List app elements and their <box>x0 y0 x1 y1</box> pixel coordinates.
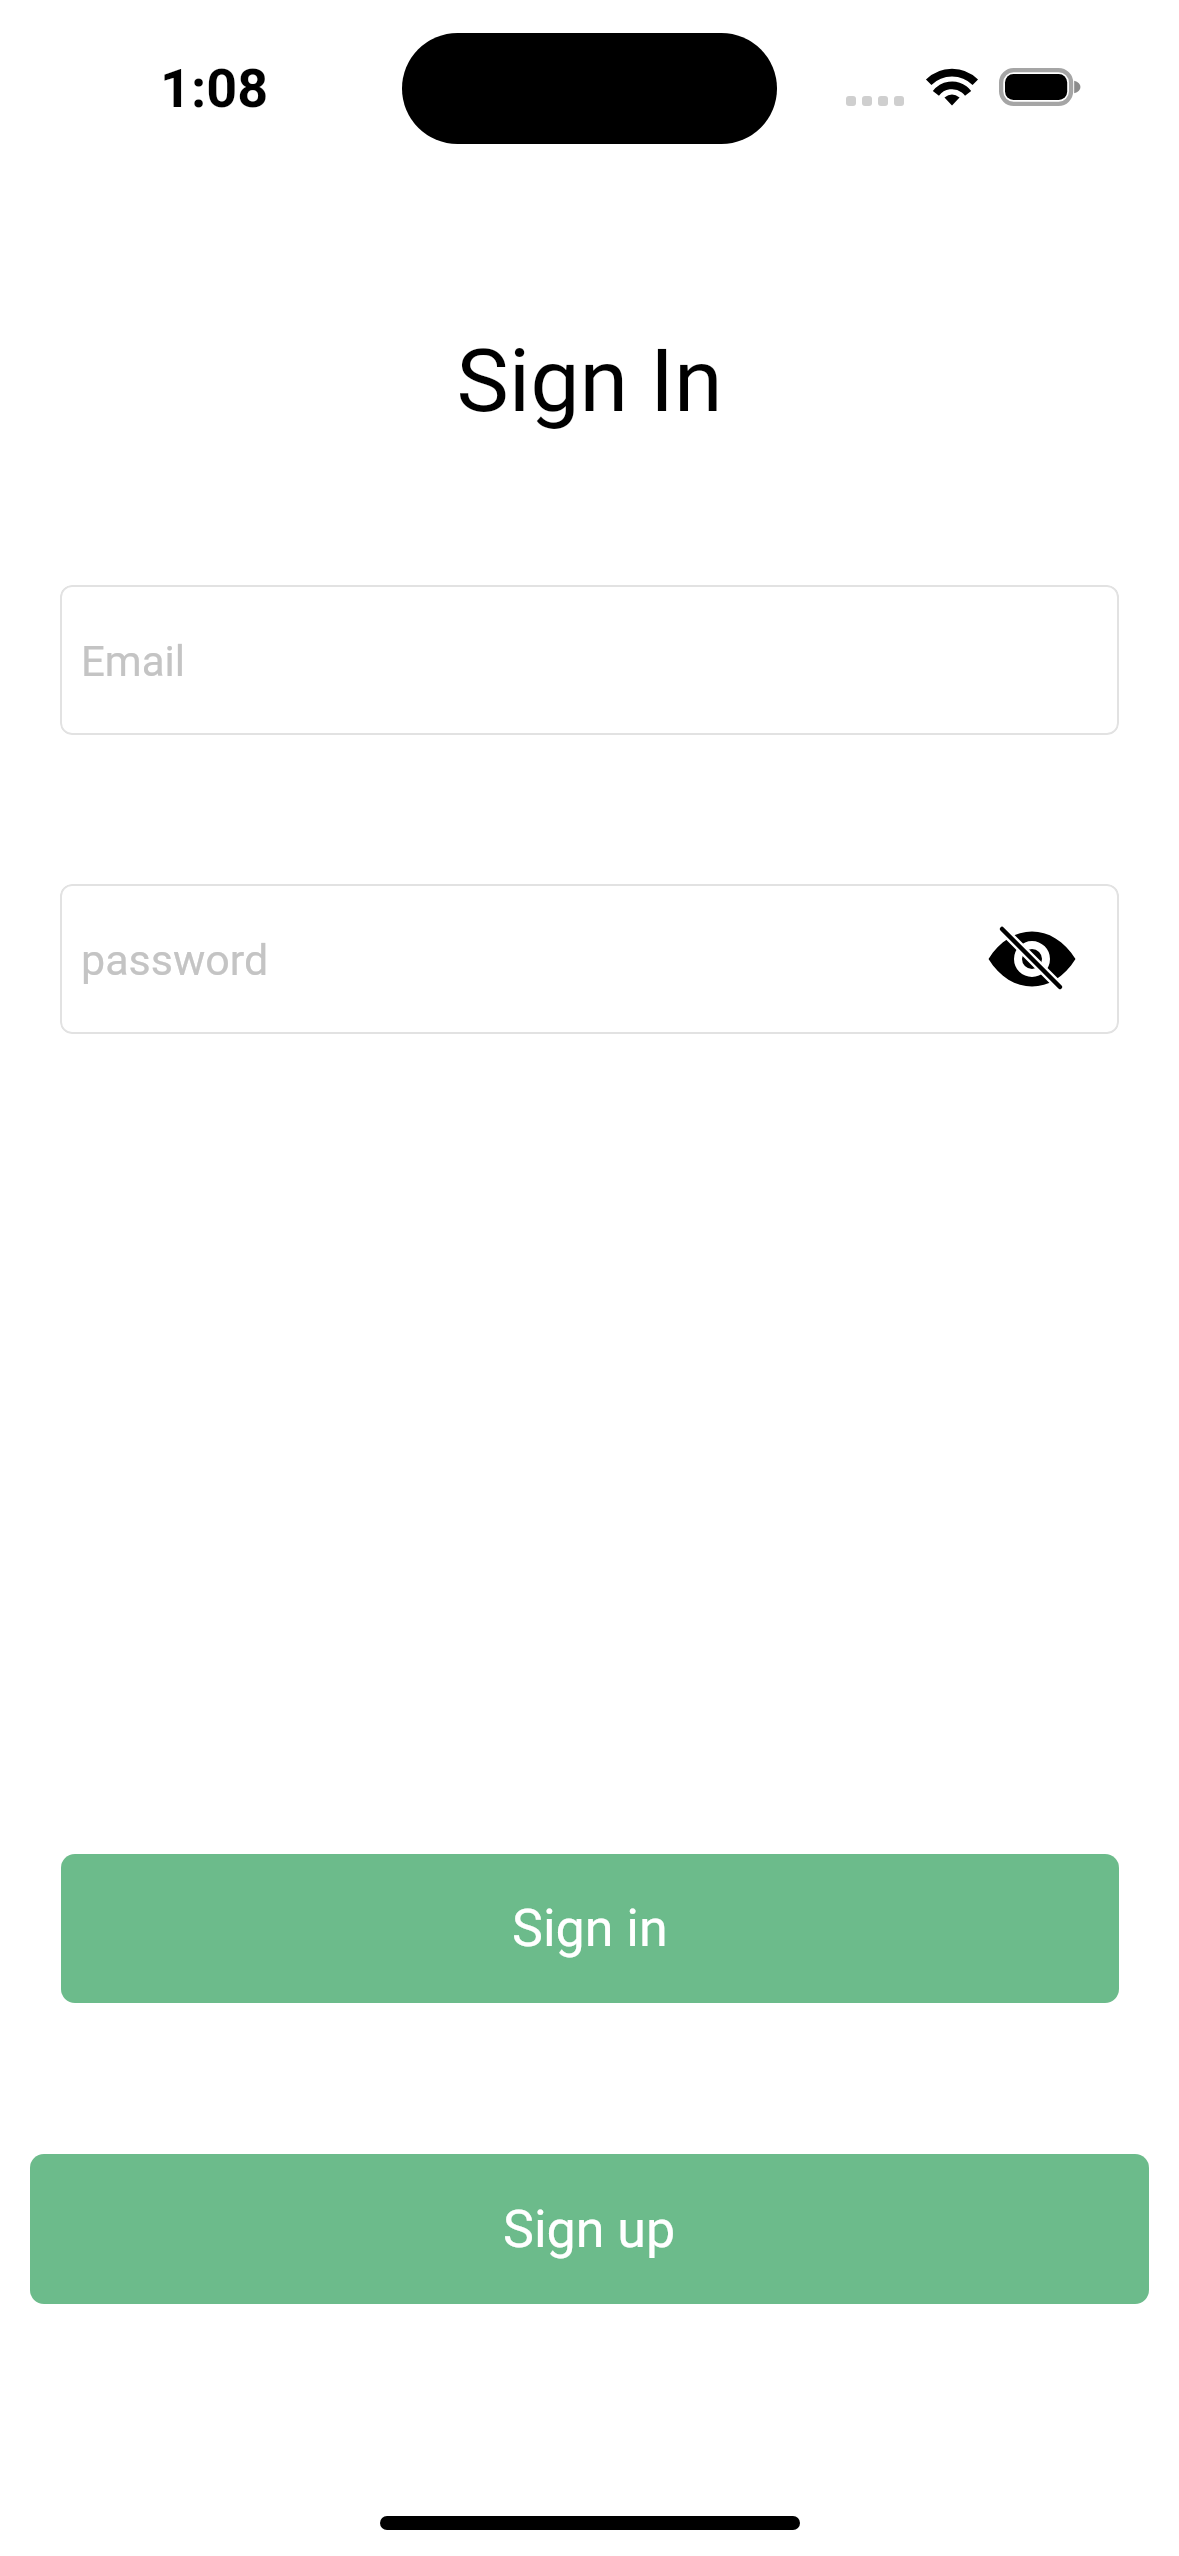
button[interactable]: Show password <box>972 884 1092 1034</box>
staticText: 1:08 <box>160 57 269 120</box>
staticText: Sign In <box>0 329 1179 432</box>
staticText: Sign in <box>512 1898 668 1959</box>
button[interactable]: Email <box>60 585 1119 735</box>
button[interactable]: Sign in <box>61 1854 1119 2003</box>
staticText: Email <box>81 637 185 686</box>
button[interactable]: password <box>60 884 1119 1034</box>
button[interactable]: Sign up <box>30 2154 1149 2304</box>
staticText: password <box>81 935 269 985</box>
staticText: Sign up <box>503 2199 676 2260</box>
